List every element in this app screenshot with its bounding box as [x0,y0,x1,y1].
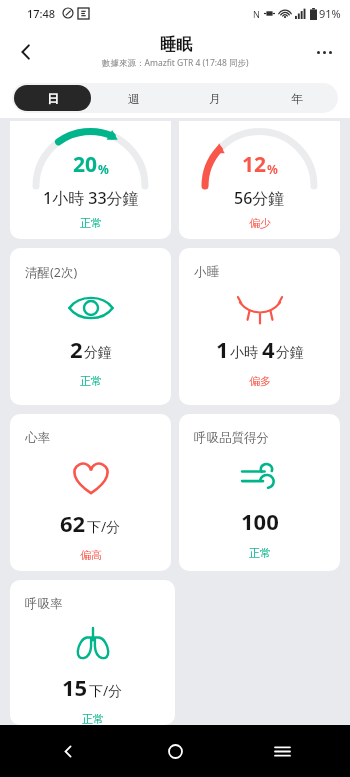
staticText: 正常 [249,546,271,560]
staticText: % [98,161,109,177]
button[interactable]: 年 [258,85,336,111]
button[interactable]: 呼吸率 [10,580,175,725]
button[interactable]: Recents [262,731,302,771]
staticText: 呼吸率 [25,596,63,612]
staticText: 17:48 [27,6,56,21]
button[interactable]: More options [304,32,344,72]
staticText: 分鐘 [84,344,112,362]
staticText: 月 [209,91,221,106]
staticText: 數據來源：Amazfit GTR 4 (17:48 同步) [102,57,249,69]
staticText: 睡眠 [160,35,192,55]
staticText: 偏高 [80,548,102,562]
staticText: 100 [241,506,279,536]
staticText: 正常 [82,712,104,725]
staticText: 小時 [230,344,258,362]
staticText: N [253,8,260,20]
button[interactable]: 清醒(2次) [10,248,171,405]
staticText: % [267,161,278,177]
button[interactable]: Back [6,32,46,72]
staticText: 小睡 [194,264,219,280]
button[interactable]: 20 [10,121,171,239]
staticText: 正常 [80,216,102,230]
staticText: 正常 [80,374,102,388]
button[interactable]: 週 [95,85,172,111]
staticText: 偏多 [249,374,271,388]
staticText: 4 [262,334,275,364]
staticText: 週 [128,91,140,106]
button[interactable]: 呼吸品質得分 [179,414,340,571]
staticText: 年 [291,91,303,106]
staticText: 日 [47,91,59,106]
button[interactable]: 心率 [10,414,171,571]
button[interactable]: 12 [179,121,340,239]
staticText: 清醒(2次) [25,264,78,281]
button[interactable]: Back [48,731,88,771]
staticText: 下/分 [87,517,121,536]
staticText: 2 [70,334,83,364]
staticText: 20 [73,150,98,179]
staticText: 1 [216,334,229,364]
button[interactable]: Home [155,731,195,771]
staticText: 呼吸品質得分 [194,430,269,446]
button[interactable]: 小睡 [179,248,340,405]
button[interactable]: 月 [176,85,254,111]
staticText: 分鐘 [276,344,304,362]
staticText: 91% [319,6,341,21]
staticText: 62 [60,508,86,538]
staticText: 心率 [25,430,50,446]
staticText: 偏少 [249,216,271,230]
staticText: 15 [62,672,88,702]
staticText: 1小時 33分鐘 [43,187,139,209]
staticText: 下/分 [89,681,123,700]
button[interactable]: 日 [14,85,91,111]
staticText: 12 [242,150,267,179]
staticText: 56分鐘 [234,187,285,209]
